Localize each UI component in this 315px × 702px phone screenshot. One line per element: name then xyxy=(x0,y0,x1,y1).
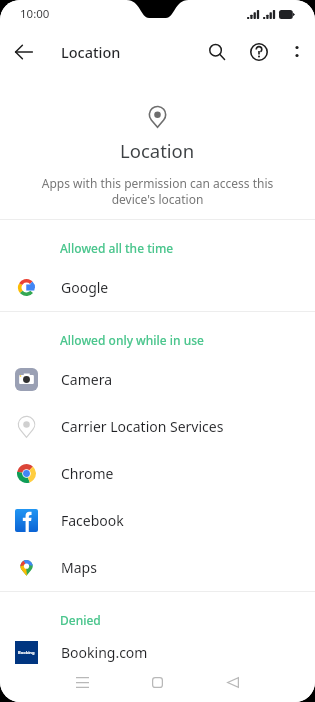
staticText: Carrier Location Services xyxy=(61,417,224,436)
button[interactable]: More options xyxy=(279,34,315,70)
button[interactable]: Help xyxy=(239,32,279,72)
staticText: Location xyxy=(120,138,195,163)
button[interactable]: Camera xyxy=(0,356,315,403)
button[interactable]: Chrome xyxy=(0,450,315,497)
button[interactable]: Search xyxy=(195,30,239,74)
staticText: Apps with this permission can access thi… xyxy=(26,175,289,207)
staticText: Allowed all the time xyxy=(60,240,174,256)
staticText: Booking.com xyxy=(61,643,148,662)
staticText: Chrome xyxy=(61,464,114,483)
button[interactable]: Booking xyxy=(0,636,315,669)
button[interactable]: Recent apps xyxy=(44,669,120,695)
staticText: Booking xyxy=(18,650,35,655)
staticText: Camera xyxy=(61,370,113,389)
staticText: Facebook xyxy=(61,511,124,530)
button[interactable]: Google xyxy=(0,264,315,311)
staticText: Location xyxy=(61,42,121,62)
button[interactable]: Back xyxy=(0,28,48,76)
button[interactable]: Maps xyxy=(0,544,315,591)
button[interactable]: Back xyxy=(195,669,270,695)
staticText: Denied xyxy=(60,612,101,628)
staticText: Allowed only while in use xyxy=(60,332,204,348)
staticText: 10:00 xyxy=(20,6,50,22)
staticText: Maps xyxy=(61,558,97,577)
button[interactable]: Home xyxy=(120,669,195,695)
button[interactable]: Carrier Location Services xyxy=(0,403,315,450)
staticText: Google xyxy=(61,278,109,297)
button[interactable]: Facebook xyxy=(0,497,315,544)
